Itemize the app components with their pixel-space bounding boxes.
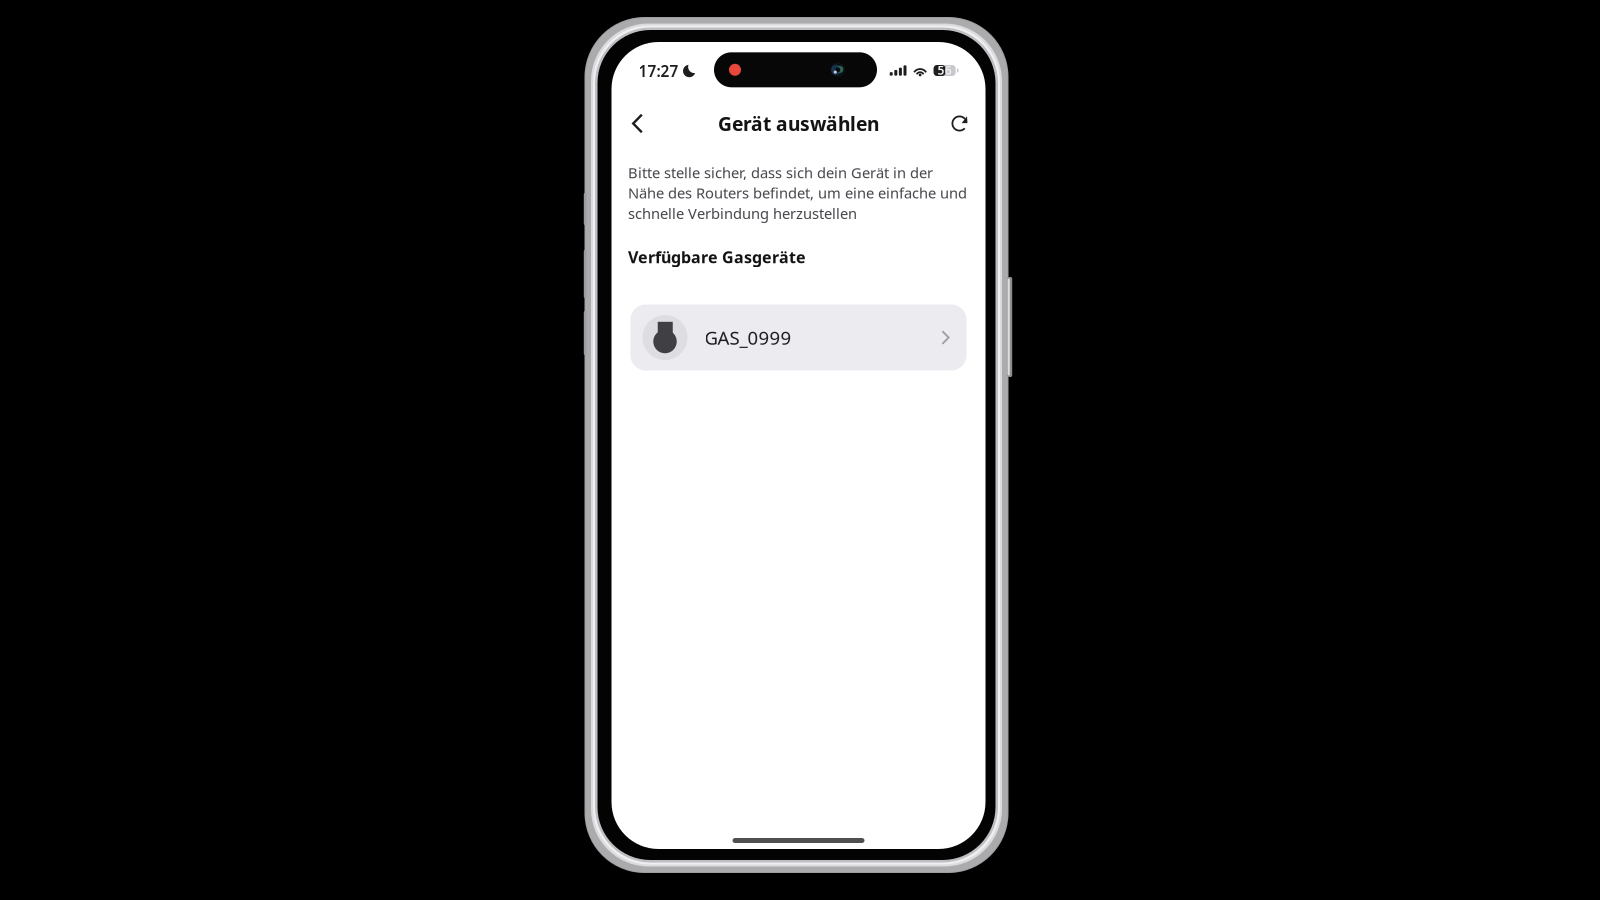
staticText: 5 bbox=[937, 62, 944, 78]
staticText: GAS_0999 bbox=[704, 325, 791, 350]
staticText: Gerät auswählen bbox=[718, 110, 879, 137]
staticText: Verfügbare Gasgeräte bbox=[628, 246, 806, 268]
staticText: schnelle Verbindung herzustellen bbox=[628, 203, 857, 223]
staticText: 6 bbox=[945, 62, 952, 78]
button[interactable]: Aktualisieren bbox=[940, 104, 978, 142]
staticText: Nähe des Routers befindet, um eine einfa… bbox=[628, 183, 967, 203]
staticText: Bitte stelle sicher, dass sich dein Gerä… bbox=[628, 162, 933, 182]
button[interactable]: GAS_0999 bbox=[630, 304, 966, 370]
staticText: 17:27 bbox=[638, 61, 678, 81]
button[interactable]: Zurück bbox=[618, 104, 656, 142]
